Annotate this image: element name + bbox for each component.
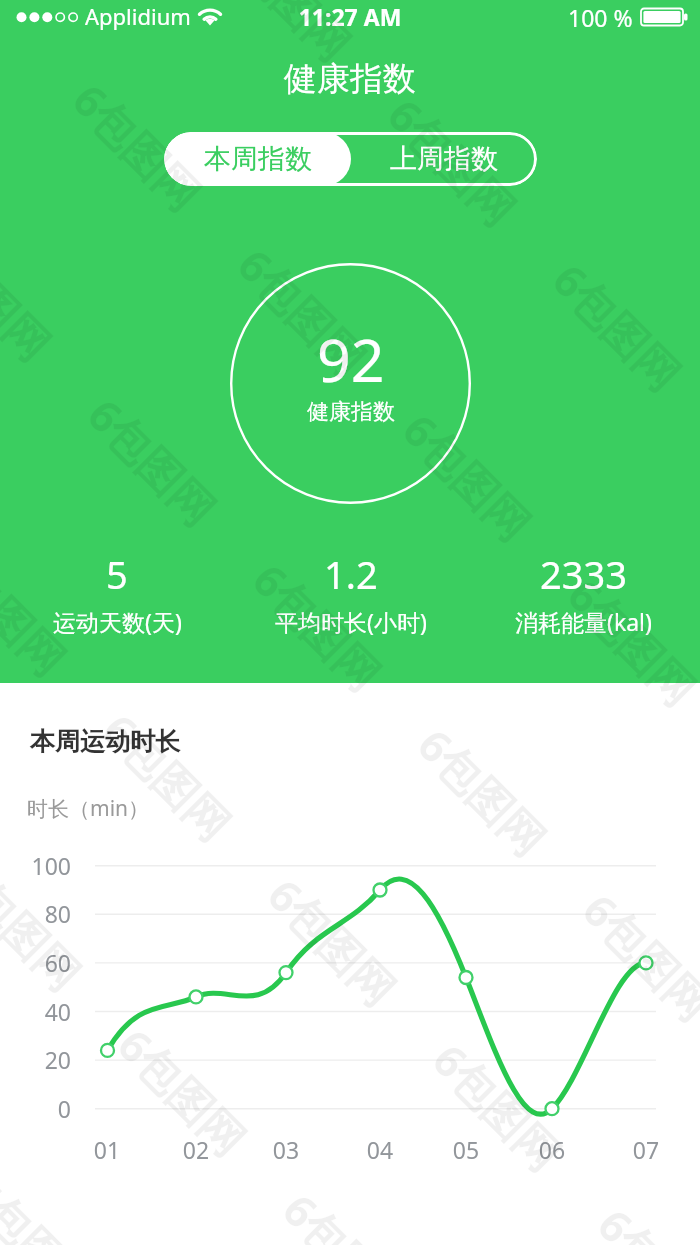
staticText: 03 <box>261 1134 311 1165</box>
staticText: 100 <box>13 850 71 881</box>
staticText: 20 <box>13 1044 71 1075</box>
staticText: 01 <box>82 1134 132 1165</box>
staticText: 5 <box>106 548 128 600</box>
staticText: 05 <box>441 1134 491 1165</box>
staticText: 消耗能量(kal) <box>515 606 652 637</box>
staticText: 07 <box>621 1134 671 1165</box>
staticText: 本周运动时长 <box>30 726 180 757</box>
staticText: 0 <box>13 1093 71 1124</box>
button[interactable]: 本周指数 <box>164 132 351 186</box>
staticText: 80 <box>13 898 71 929</box>
staticText: 上周指数 <box>390 142 498 176</box>
staticText: Applidium <box>85 1 191 31</box>
staticText: 11:27 AM <box>0 1 700 32</box>
staticText: 时长（min） <box>27 794 150 823</box>
staticText: 60 <box>13 947 71 978</box>
staticText: 2333 <box>540 548 627 600</box>
button[interactable]: 上周指数 <box>351 132 537 186</box>
staticText: 92 <box>317 319 385 399</box>
staticText: 运动天数(天) <box>53 606 182 637</box>
staticText: 1.2 <box>324 548 378 600</box>
staticText: 100 % <box>568 2 633 33</box>
staticText: 04 <box>355 1134 405 1165</box>
staticText: 40 <box>13 996 71 1027</box>
staticText: 本周指数 <box>204 142 312 176</box>
staticText: 02 <box>171 1134 221 1165</box>
staticText: 平均时长(小时) <box>275 606 427 637</box>
staticText: 健康指数 <box>0 58 700 100</box>
staticText: 06 <box>527 1134 577 1165</box>
staticText: 健康指数 <box>307 398 395 426</box>
